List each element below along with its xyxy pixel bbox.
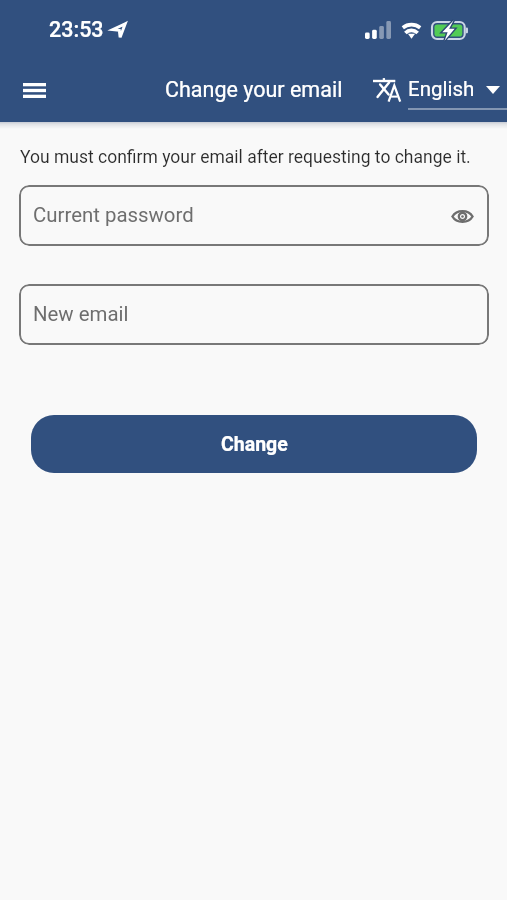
button[interactable]: Current password: [19, 185, 489, 246]
button[interactable]: New email: [19, 284, 489, 345]
button[interactable]: Open navigation menu: [11, 67, 57, 113]
staticText: Current password: [33, 203, 194, 227]
button[interactable]: Show password: [447, 201, 477, 231]
button[interactable]: Change: [31, 415, 477, 473]
staticText: English: [408, 77, 475, 101]
staticText: Change your email: [165, 77, 343, 102]
staticText: New email: [33, 302, 129, 326]
button[interactable]: Select language English: [374, 78, 500, 102]
staticText: 23:53: [49, 17, 104, 42]
staticText: Change: [221, 433, 288, 456]
staticText: You must confirm your email after reques…: [20, 147, 471, 168]
